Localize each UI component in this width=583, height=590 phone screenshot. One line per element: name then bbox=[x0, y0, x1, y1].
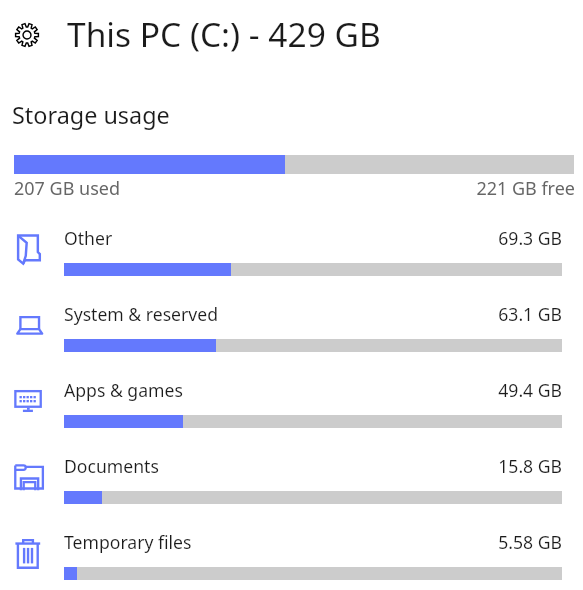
staticText: 63.1 GB bbox=[362, 302, 562, 326]
staticText: 5.58 GB bbox=[362, 530, 562, 554]
staticText: 221 GB free bbox=[375, 176, 575, 201]
button[interactable]: Temporary files bbox=[0, 524, 583, 590]
staticText: System & reserved bbox=[64, 302, 218, 326]
staticText: Other bbox=[64, 226, 113, 250]
button[interactable]: Other bbox=[0, 220, 583, 290]
staticText: Temporary files bbox=[64, 530, 192, 554]
staticText: 69.3 GB bbox=[362, 226, 562, 250]
staticText: 207 GB used bbox=[14, 176, 121, 201]
staticText: This PC (C:) - 429 GB bbox=[67, 11, 381, 57]
staticText: Apps & games bbox=[64, 378, 183, 402]
button[interactable]: Settings bbox=[0, 6, 583, 64]
staticText: Storage usage bbox=[12, 99, 170, 131]
other: Settings bbox=[14, 22, 40, 48]
staticText: Documents bbox=[64, 454, 159, 478]
button[interactable]: System & reserved bbox=[0, 296, 583, 366]
staticText: 49.4 GB bbox=[362, 378, 562, 402]
staticText: 15.8 GB bbox=[362, 454, 562, 478]
button[interactable]: Apps & games bbox=[0, 372, 583, 442]
button[interactable]: Documents bbox=[0, 448, 583, 518]
